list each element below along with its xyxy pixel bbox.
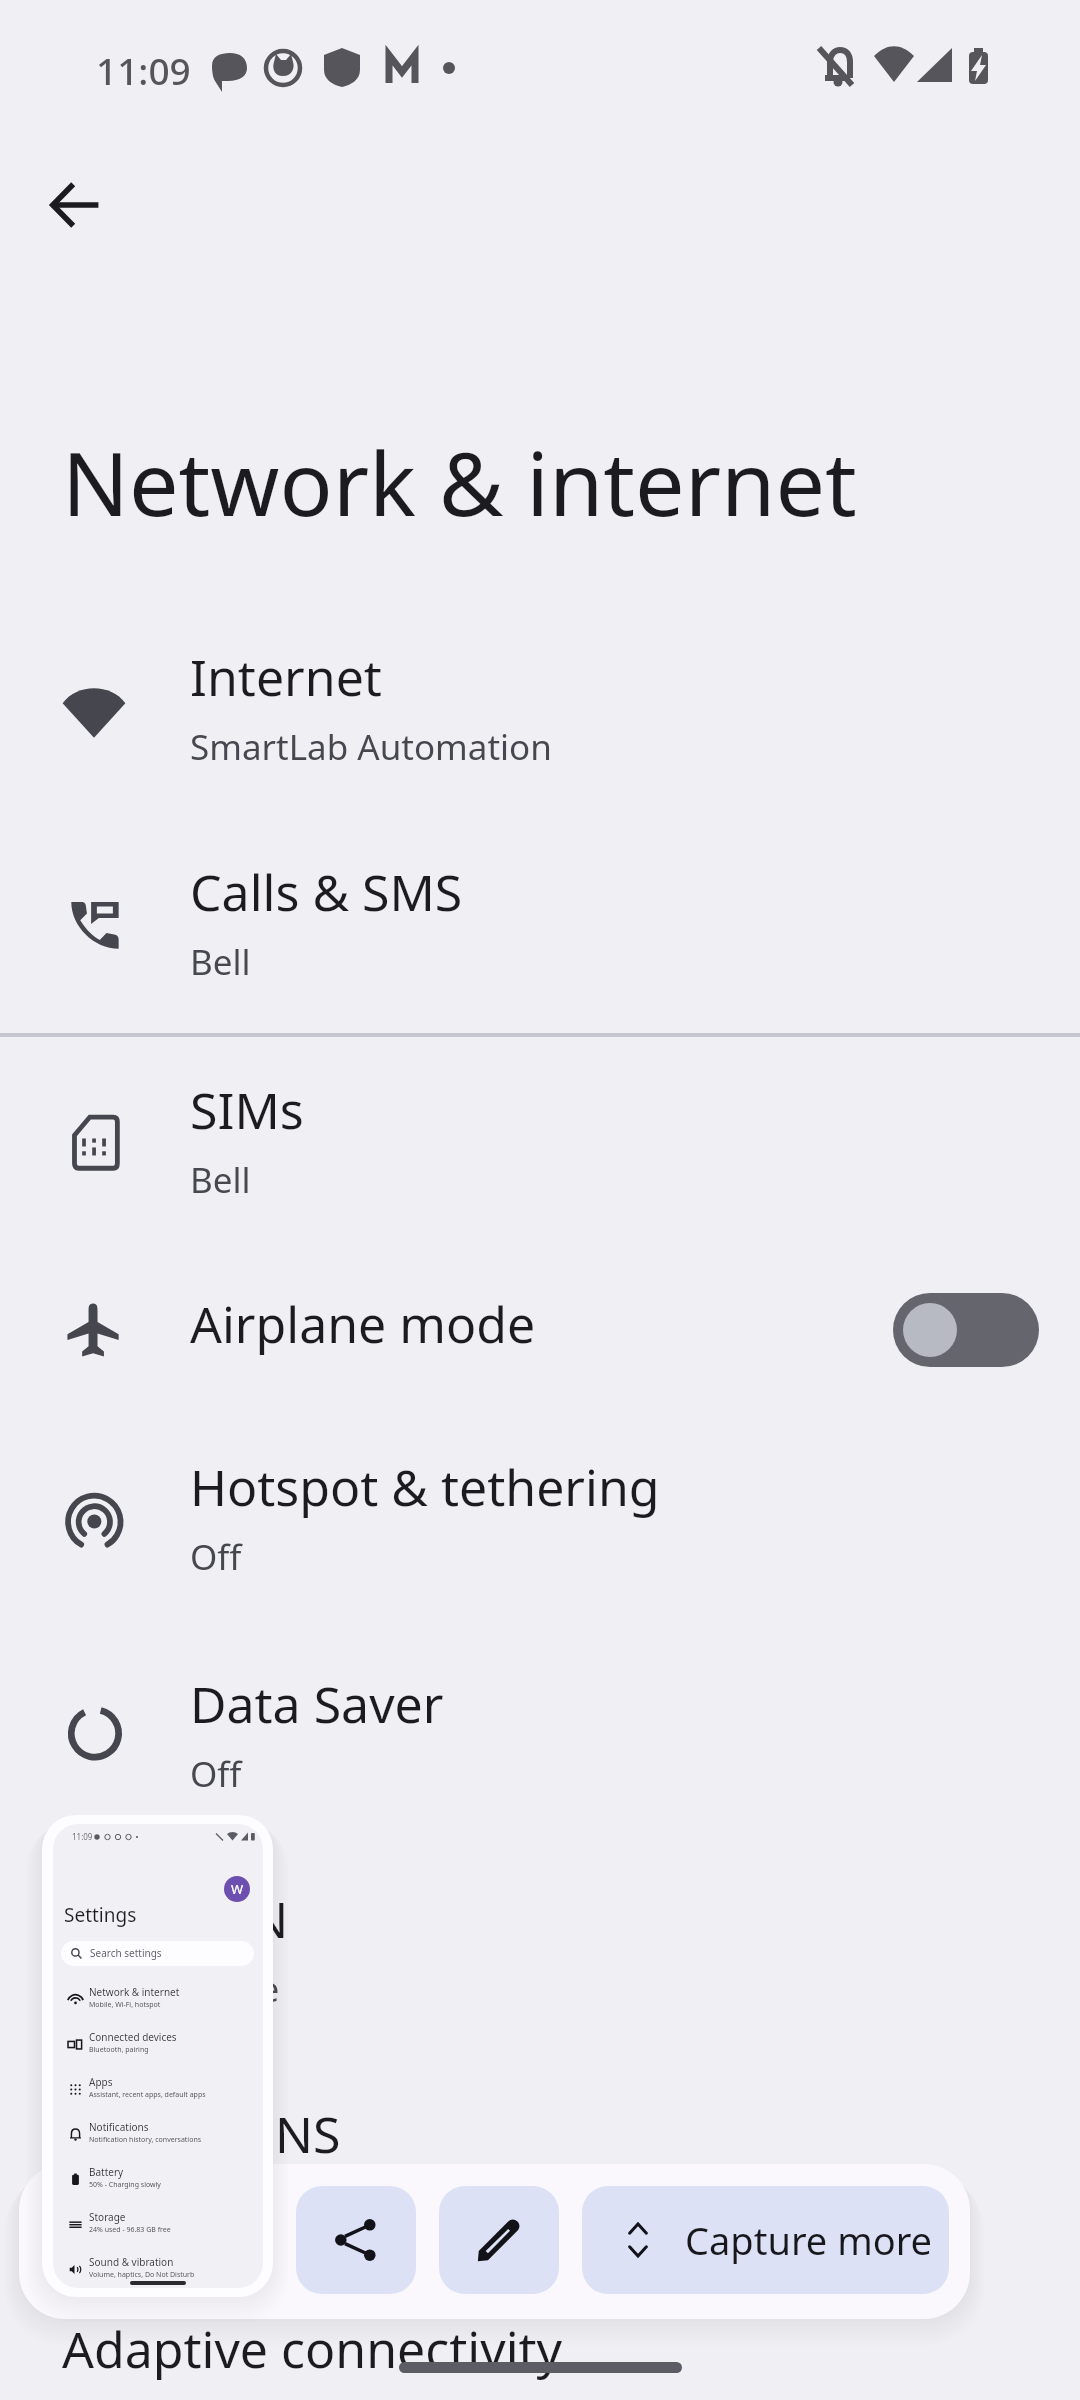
staticText: Bell xyxy=(190,938,251,986)
staticText: Network & internet xyxy=(62,422,857,542)
staticText: None xyxy=(190,1965,280,2013)
staticText: Airplane mode xyxy=(190,1290,536,1358)
button[interactable]: Search settings xyxy=(61,1941,254,1966)
button[interactable]: Calls & SMS xyxy=(0,806,1080,1006)
button[interactable]: Internet xyxy=(0,591,1080,791)
staticText: Bluetooth, pairing xyxy=(89,2045,149,2055)
button[interactable]: Adaptive connectivity xyxy=(0,2263,1080,2400)
staticText: Internet xyxy=(190,643,382,711)
staticText: Adaptive connectivity xyxy=(62,2315,563,2383)
staticText: Automatic xyxy=(62,2180,231,2228)
button[interactable]: Screenshot preview xyxy=(42,1815,273,2297)
staticText: SmartLab Automation xyxy=(190,723,552,771)
staticText: Assistant, recent apps, default apps xyxy=(89,2090,206,2100)
button[interactable]: Airplane mode toggle xyxy=(893,1293,1039,1367)
staticText: 11:09 xyxy=(72,1831,93,1842)
staticText: Volume, haptics, Do Not Disturb xyxy=(89,2270,195,2280)
staticText: Connected devices xyxy=(89,2030,177,2044)
staticText: W xyxy=(231,1880,244,1898)
staticText: VPN xyxy=(190,1885,289,1953)
button[interactable]: Edit xyxy=(439,2186,559,2294)
button[interactable]: SIMs xyxy=(0,1024,1080,1224)
staticText: SIMs xyxy=(190,1076,304,1144)
staticText: Hotspot & tethering xyxy=(190,1453,660,1521)
staticText: Search settings xyxy=(90,1946,162,1960)
staticText: 11:09 xyxy=(96,45,191,95)
staticText: Bell xyxy=(190,1156,251,1204)
staticText: Storage xyxy=(89,2210,126,2224)
staticText: 24% used - 96.83 GB free xyxy=(89,2225,171,2235)
staticText: Data Saver xyxy=(190,1670,444,1738)
staticText: Notification history, conversations xyxy=(89,2135,202,2145)
staticText: 50% - Charging slowly xyxy=(89,2180,161,2190)
button[interactable]: Share xyxy=(296,2186,416,2294)
staticText: Apps xyxy=(89,2075,113,2089)
button[interactable]: Private DNS xyxy=(0,2048,1080,2248)
staticText: Sound & vibration xyxy=(89,2255,174,2269)
button[interactable]: VPN xyxy=(0,1833,1080,2033)
button[interactable]: Hotspot & tethering xyxy=(0,1401,1080,1601)
staticText: Notifications xyxy=(89,2120,149,2134)
staticText: Calls & SMS xyxy=(190,858,463,926)
staticText: Battery xyxy=(89,2165,124,2179)
staticText: Off xyxy=(190,1750,242,1798)
button[interactable]: Data Saver xyxy=(0,1618,1080,1818)
staticText: Network & internet xyxy=(89,1985,180,1999)
staticText: Off xyxy=(190,1533,242,1581)
button[interactable]: Capture more xyxy=(582,2186,949,2294)
button[interactable]: Airplane mode xyxy=(0,1238,1080,1388)
button[interactable]: Back xyxy=(32,159,124,251)
staticText: Settings xyxy=(64,1902,137,1928)
staticText: Mobile, Wi-Fi, hotspot xyxy=(89,2000,161,2010)
staticText: Capture more xyxy=(685,2214,933,2266)
staticText: Private DNS xyxy=(62,2100,341,2168)
